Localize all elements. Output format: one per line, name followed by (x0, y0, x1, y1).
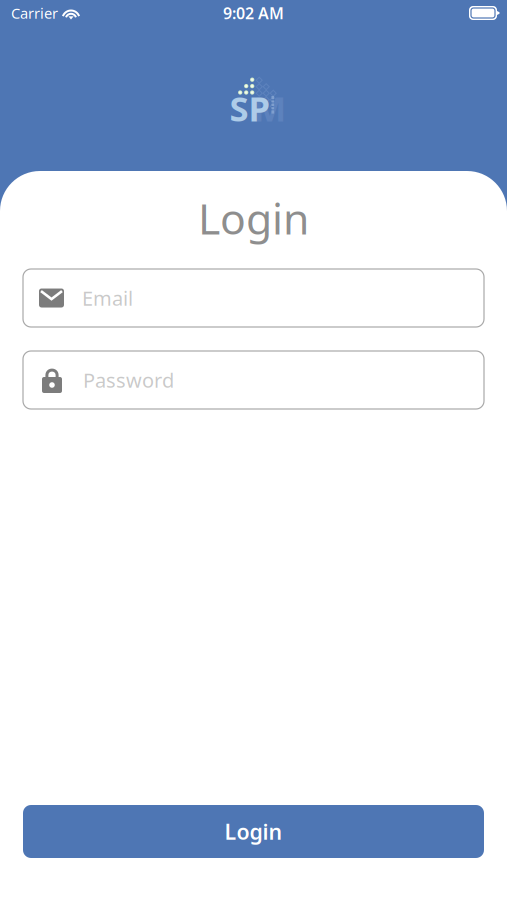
staticText: Carrier (11, 3, 58, 23)
button[interactable]: Email (23, 269, 484, 327)
button[interactable]: Login (23, 805, 484, 858)
button[interactable]: Password (23, 351, 484, 409)
staticText: Email (82, 285, 133, 311)
staticText: M (253, 85, 286, 131)
staticText: Login (198, 190, 309, 246)
staticText: Login (224, 817, 282, 846)
staticText: SP (229, 85, 270, 131)
staticText: 9:02 AM (223, 2, 284, 24)
staticText: Password (83, 367, 174, 393)
